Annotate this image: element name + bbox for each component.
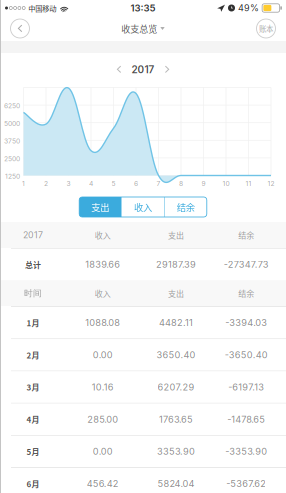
staticText: 支出 — [168, 229, 184, 241]
staticText: 结余 — [177, 200, 195, 214]
button[interactable]: 总计 — [0, 249, 286, 280]
staticText: 2月 — [26, 349, 39, 361]
staticText: 4月 — [26, 413, 39, 425]
staticText: 9 — [201, 179, 205, 188]
staticText: -3353.90 — [225, 446, 267, 457]
staticText: 1088.08 — [85, 317, 120, 328]
button[interactable]: 2月 — [0, 339, 286, 371]
staticText: 3650.40 — [156, 349, 195, 360]
staticText: -5367.62 — [226, 478, 266, 489]
staticText: 2017 — [23, 230, 43, 240]
staticText: 49% — [238, 2, 259, 13]
staticText: 3750 — [4, 137, 20, 145]
staticText: 0.00 — [93, 349, 113, 360]
staticText: 7 — [156, 179, 160, 188]
staticText: 1 — [22, 179, 25, 188]
staticText: 4482.11 — [159, 317, 193, 328]
staticText: 456.42 — [87, 478, 119, 489]
staticText: 时间 — [24, 288, 42, 299]
staticText: 8 — [179, 179, 183, 188]
staticText: 5824.04 — [157, 478, 194, 489]
button[interactable]: 支出 — [79, 197, 121, 217]
staticText: 6250 — [4, 102, 20, 110]
button[interactable]: 收支总览 — [121, 16, 165, 41]
staticText: 6月 — [26, 478, 39, 489]
staticText: 12 — [267, 179, 274, 188]
staticText: 总计 — [25, 259, 41, 270]
staticText: 10.16 — [92, 381, 114, 393]
button[interactable]: Previous year — [106, 60, 131, 78]
staticText: 收入 — [134, 200, 152, 214]
staticText: 1月 — [26, 317, 39, 328]
button[interactable]: 4月 — [0, 404, 286, 435]
staticText: 11 — [245, 179, 251, 188]
button[interactable]: 账本 — [251, 16, 281, 41]
staticText: 5 — [111, 179, 115, 188]
staticText: 中国移动 — [28, 3, 56, 13]
staticText: 5000 — [4, 119, 20, 128]
staticText: 13:35 — [130, 2, 155, 14]
staticText: 2017 — [131, 63, 154, 76]
staticText: -1478.65 — [227, 414, 265, 425]
staticText: 1763.65 — [159, 414, 193, 425]
staticText: 支出 — [168, 287, 184, 299]
staticText: 1839.66 — [85, 259, 120, 270]
staticText: 收入 — [95, 229, 111, 241]
staticText: 4 — [89, 179, 93, 188]
button[interactable]: Back — [5, 16, 35, 41]
staticText: 0.00 — [93, 446, 113, 457]
staticText: 10 — [222, 179, 229, 188]
button[interactable]: 3月 — [0, 371, 286, 403]
staticText: 账本 — [259, 23, 273, 34]
staticText: -27347.73 — [224, 259, 269, 270]
staticText: 1250 — [5, 172, 20, 180]
staticText: 3 — [66, 179, 70, 188]
staticText: -3650.40 — [225, 349, 268, 360]
staticText: 3月 — [26, 381, 39, 393]
button[interactable]: 收入 — [122, 197, 164, 217]
staticText: 结余 — [238, 229, 254, 241]
staticText: -3394.03 — [225, 317, 267, 328]
staticText: 支出 — [91, 200, 109, 214]
staticText: 2 — [44, 179, 48, 188]
button[interactable]: 结余 — [165, 197, 207, 217]
staticText: 3353.90 — [157, 446, 195, 457]
staticText: -6197.13 — [228, 381, 264, 393]
staticText: 6 — [134, 179, 138, 188]
staticText: 6207.29 — [157, 381, 194, 393]
staticText: 5月 — [26, 446, 39, 457]
button[interactable]: Next year — [154, 60, 179, 78]
staticText: 2500 — [4, 155, 20, 163]
staticText: 29187.39 — [156, 259, 196, 270]
staticText: 收支总览 — [121, 22, 157, 35]
staticText: 收入 — [95, 287, 111, 299]
staticText: 结余 — [238, 287, 254, 299]
button[interactable]: 5月 — [0, 436, 286, 467]
button[interactable]: 6月 — [0, 468, 286, 493]
button[interactable]: 1月 — [0, 307, 286, 338]
staticText: 285.00 — [87, 414, 118, 425]
